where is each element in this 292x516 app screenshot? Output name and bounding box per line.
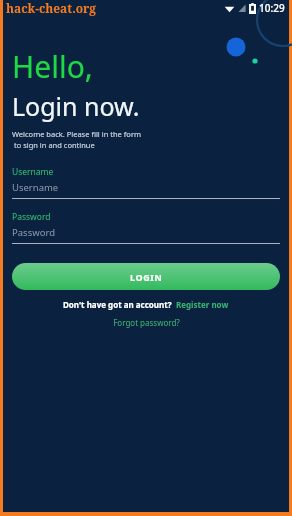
staticText: Login now. bbox=[12, 89, 140, 123]
staticText: Hello, bbox=[12, 46, 93, 87]
other: Signal bbox=[238, 3, 246, 13]
other: Wi-Fi bbox=[224, 3, 235, 14]
staticText: Password bbox=[12, 226, 55, 239]
other: Battery bbox=[249, 3, 256, 14]
staticText: hack-cheat.org bbox=[6, 0, 97, 16]
staticText: Welcome back. Please fill in the form to… bbox=[12, 129, 141, 150]
button[interactable]: Register now bbox=[176, 299, 229, 310]
button[interactable]: Username bbox=[12, 166, 280, 199]
staticText: Username bbox=[12, 166, 54, 178]
staticText: LOGIN bbox=[130, 271, 163, 283]
staticText: Password bbox=[12, 211, 51, 223]
staticText: Register now bbox=[176, 299, 229, 310]
button[interactable]: LOGIN bbox=[12, 263, 280, 290]
staticText: Don't have got an account? bbox=[63, 299, 172, 310]
staticText: Forgot password? bbox=[113, 317, 180, 328]
staticText: 10:29 bbox=[259, 1, 285, 15]
button[interactable]: Forgot password? bbox=[12, 317, 280, 328]
button[interactable]: Password bbox=[12, 211, 280, 244]
staticText: Username bbox=[12, 181, 59, 194]
